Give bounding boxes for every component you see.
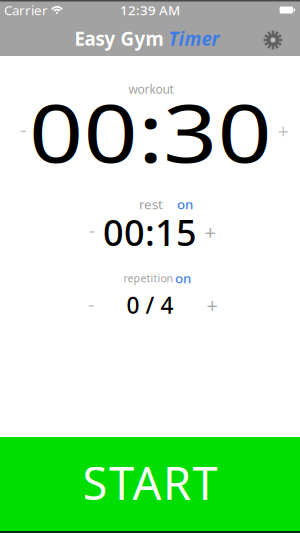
staticText: START [82, 452, 217, 513]
button[interactable]: Decrement [8, 114, 38, 144]
staticText: Easy Gym [74, 26, 163, 51]
staticText: - [89, 217, 95, 243]
staticText: 0 / 4 [126, 290, 173, 320]
staticText: + [206, 292, 217, 318]
button[interactable]: Increment [195, 217, 225, 247]
staticText: workout [128, 81, 173, 97]
button[interactable]: Decrement [77, 215, 107, 245]
staticText: - [88, 291, 94, 317]
staticText: 00:30 [48, 78, 253, 185]
staticText: on [175, 269, 191, 287]
button[interactable]: Increment [268, 115, 298, 145]
staticText: + [277, 117, 288, 144]
staticText: + [204, 219, 215, 245]
button[interactable]: on [172, 194, 198, 214]
staticText: Timer [168, 26, 219, 51]
staticText: Carrier [4, 1, 48, 19]
staticText: repetition [123, 271, 173, 285]
staticText: 12:39 AM [120, 1, 180, 19]
staticText: - [20, 116, 26, 143]
button[interactable]: Settings [263, 30, 283, 50]
staticText: 00:15 [103, 208, 197, 256]
button[interactable]: START [0, 437, 300, 533]
button[interactable]: Decrement [76, 289, 106, 319]
button[interactable]: on [170, 268, 196, 288]
button[interactable]: Increment [197, 290, 227, 320]
staticText: rest [139, 195, 163, 213]
staticText: on [177, 195, 193, 213]
